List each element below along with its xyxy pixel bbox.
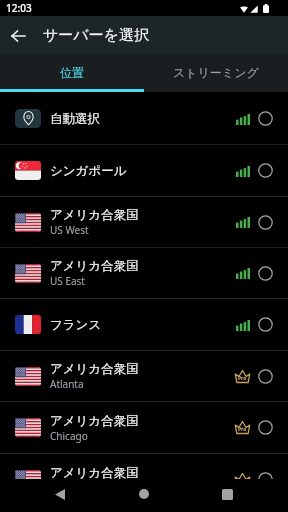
staticText: 位置 <box>60 65 84 80</box>
staticText: 12:03 <box>6 1 32 15</box>
button[interactable]: アメリカ合衆国 <box>0 197 288 247</box>
button[interactable]: フランス <box>0 299 288 350</box>
staticText: アメリカ合衆国 <box>50 258 139 274</box>
staticText: シンガポール <box>50 163 127 179</box>
staticText: アメリカ合衆国 <box>50 465 139 479</box>
staticText: US East <box>50 274 85 288</box>
button[interactable]: 位置 <box>0 55 144 89</box>
staticText: アメリカ合衆国 <box>50 413 139 429</box>
staticText: Chicago <box>50 429 88 443</box>
button[interactable]: Back <box>24 479 96 509</box>
staticText: ストリーミング <box>173 65 259 80</box>
button[interactable]: アメリカ合衆国 <box>0 454 288 479</box>
button[interactable]: Home <box>96 479 191 509</box>
staticText: アメリカ合衆国 <box>50 207 139 223</box>
button[interactable]: アメリカ合衆国 <box>0 402 288 453</box>
staticText: Pro <box>238 426 247 433</box>
staticText: サーバーを選択 <box>43 26 150 45</box>
button[interactable]: アメリカ合衆国 <box>0 351 288 401</box>
button[interactable]: アメリカ合衆国 <box>0 248 288 298</box>
staticText: アメリカ合衆国 <box>50 361 139 377</box>
staticText: Atlanta <box>50 377 84 391</box>
button[interactable]: Back <box>0 18 36 54</box>
staticText: 自動選択 <box>50 111 100 127</box>
staticText: Pro <box>238 375 247 382</box>
staticText: フランス <box>50 317 102 333</box>
button[interactable]: ストリーミング <box>144 55 288 89</box>
button[interactable]: シンガポール <box>0 145 288 196</box>
button[interactable]: Recent apps <box>191 479 263 509</box>
button[interactable]: 自動選択 <box>0 93 288 144</box>
staticText: Pro <box>238 478 247 479</box>
staticText: US West <box>50 223 89 237</box>
